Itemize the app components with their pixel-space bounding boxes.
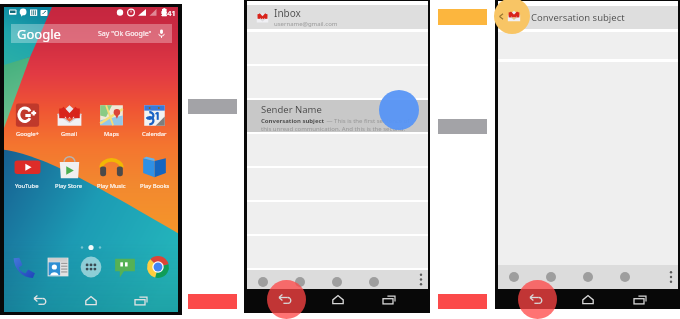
staticText: Play Books bbox=[140, 182, 170, 190]
button[interactable]: Back bbox=[267, 280, 306, 319]
button[interactable]: Home bbox=[78, 292, 104, 309]
staticText: Google+ bbox=[16, 130, 39, 138]
button[interactable]: Action 4 bbox=[369, 277, 379, 287]
button[interactable]: Open conversation bbox=[379, 90, 419, 130]
staticText: 5:41 bbox=[161, 8, 176, 18]
button[interactable]: More options bbox=[414, 270, 428, 289]
button[interactable]: Play Books bbox=[133, 154, 176, 190]
staticText: Inbox bbox=[274, 6, 301, 20]
button[interactable]: Home bbox=[575, 291, 601, 308]
button[interactable]: Up bbox=[494, 0, 530, 34]
button[interactable]: Action 2 bbox=[546, 272, 556, 282]
button[interactable]: Action 4 bbox=[620, 272, 630, 282]
button[interactable]: Action 2 bbox=[295, 277, 305, 287]
button[interactable]: Chrome bbox=[145, 254, 171, 280]
staticText: YouTube bbox=[15, 182, 39, 190]
staticText: — This is the first sentence of bbox=[325, 117, 410, 125]
button[interactable]: Action 3 bbox=[583, 272, 593, 282]
button[interactable]: Recents bbox=[376, 291, 402, 308]
button[interactable]: Action 1 bbox=[258, 277, 268, 287]
button[interactable]: Inbox bbox=[247, 5, 428, 29]
button[interactable]: Conversation subject bbox=[498, 6, 678, 29]
button[interactable]: All apps bbox=[78, 254, 104, 280]
button[interactable]: Phone bbox=[11, 254, 37, 280]
staticText: Say "Ok Google" bbox=[98, 29, 152, 39]
staticText: username@gmail.com bbox=[274, 20, 338, 28]
button[interactable]: Google+ bbox=[6, 102, 48, 138]
button[interactable]: Google bbox=[11, 24, 172, 43]
staticText: Calendar bbox=[142, 130, 167, 138]
button[interactable]: Play Store bbox=[48, 154, 90, 190]
button[interactable]: YouTube bbox=[6, 154, 48, 190]
button[interactable]: Back bbox=[28, 292, 54, 309]
button[interactable]: Back bbox=[518, 280, 557, 319]
staticText: this unread communication. And this is t… bbox=[261, 125, 406, 132]
button[interactable]: Play Music bbox=[90, 154, 133, 190]
button[interactable]: Recents bbox=[128, 292, 154, 309]
staticText: Google bbox=[17, 25, 61, 43]
staticText: Play Store bbox=[55, 182, 83, 190]
staticText: Conversation subject bbox=[261, 117, 325, 125]
button[interactable]: Calendar bbox=[133, 102, 176, 138]
button[interactable]: Recents bbox=[627, 291, 653, 308]
staticText: Play Music bbox=[97, 182, 126, 190]
button[interactable]: Contacts bbox=[45, 254, 71, 280]
button[interactable] bbox=[498, 32, 678, 59]
staticText: Maps bbox=[104, 130, 119, 138]
button[interactable]: Maps bbox=[90, 102, 133, 138]
staticText: Conversation subject bbox=[531, 11, 625, 24]
button[interactable]: More options bbox=[664, 266, 678, 288]
staticText: Gmail bbox=[61, 130, 77, 138]
button[interactable]: Hangouts bbox=[112, 254, 138, 280]
button[interactable]: Back bbox=[273, 291, 299, 308]
button[interactable] bbox=[247, 66, 428, 98]
button[interactable]: Back bbox=[524, 291, 550, 308]
button[interactable]: Home bbox=[325, 291, 351, 308]
button[interactable]: Sender Name bbox=[247, 100, 428, 132]
staticText: Sender Name bbox=[261, 103, 322, 116]
button[interactable]: Action 3 bbox=[332, 277, 342, 287]
button[interactable]: Gmail bbox=[48, 102, 90, 138]
button[interactable]: Action 1 bbox=[509, 272, 519, 282]
